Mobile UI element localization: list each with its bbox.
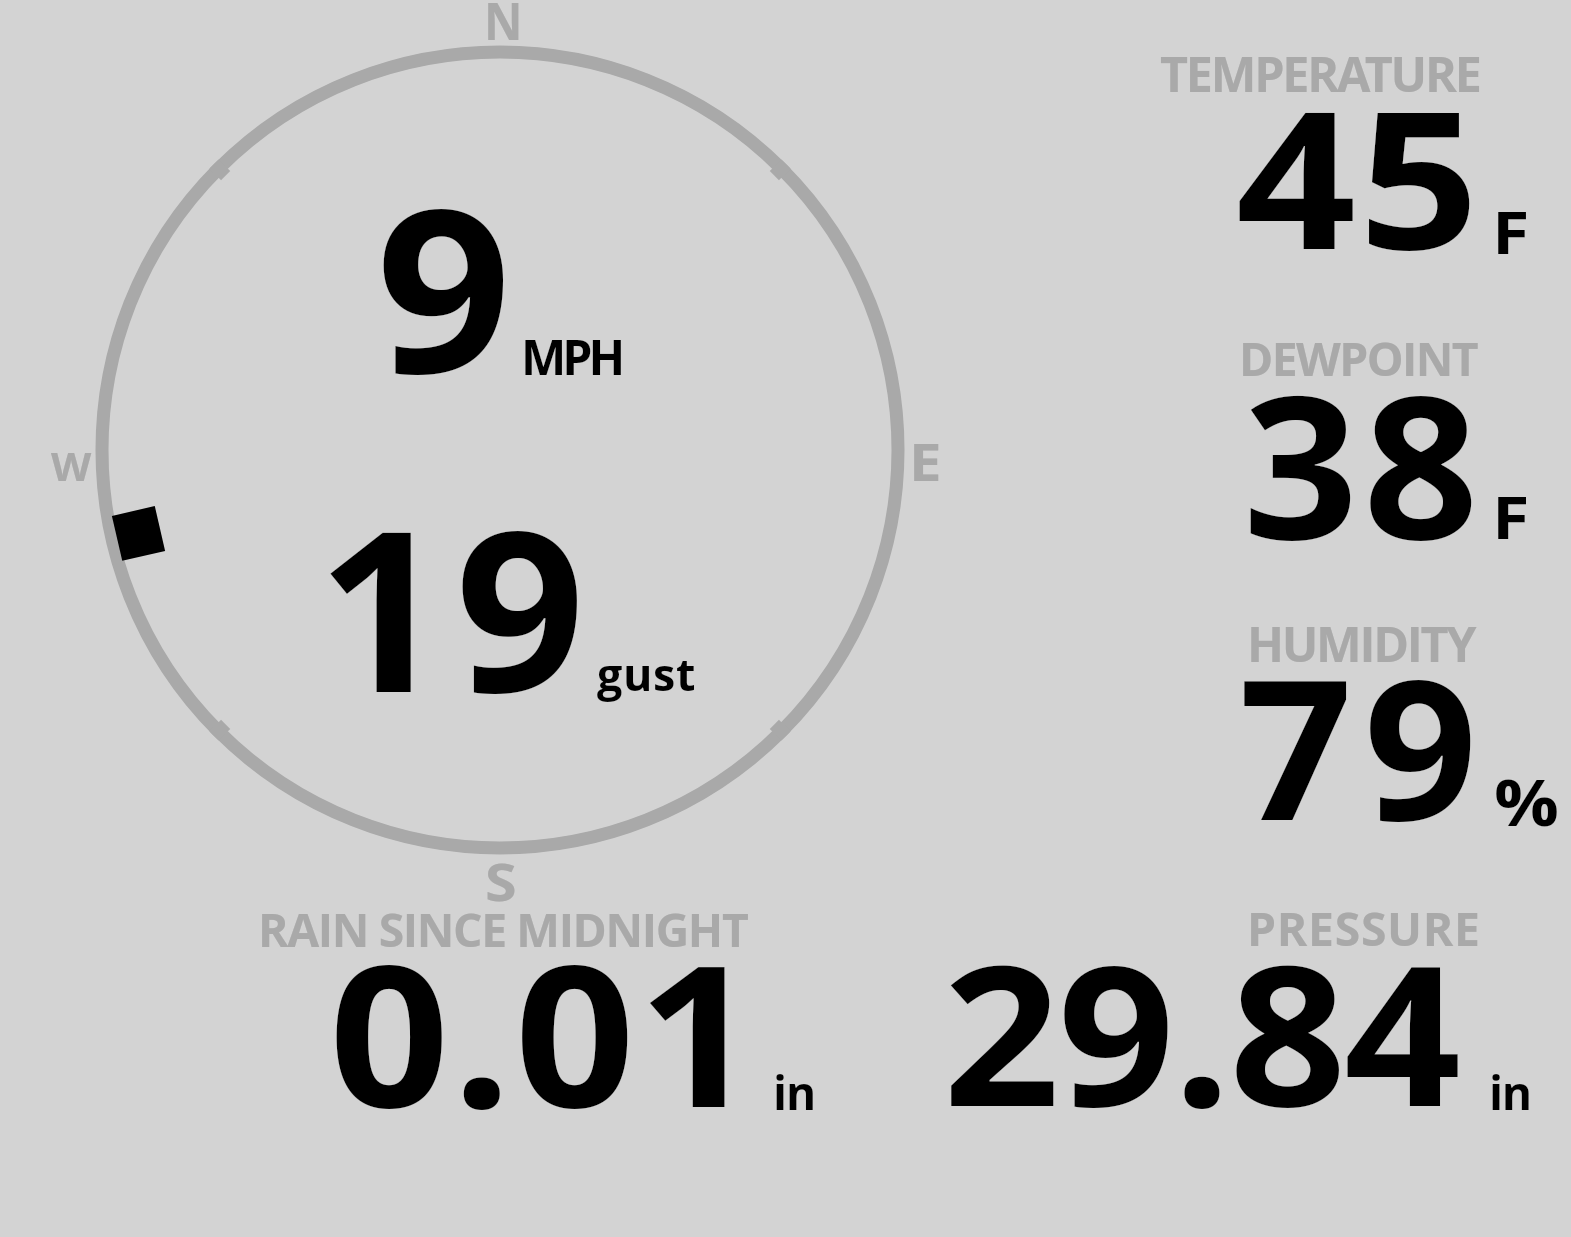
button[interactable]: Rain since midnight 0.01 inches [200, 885, 880, 1135]
staticText: PRESSURE [1247, 897, 1481, 960]
staticText: 9 [376, 132, 512, 440]
staticText: 38 [1243, 328, 1484, 597]
button[interactable]: Humidity 79 percent [1100, 598, 1571, 868]
staticText: RAIN SINCE MIDNIGHT [258, 898, 748, 961]
staticText: 45 [1236, 44, 1482, 304]
staticText: 79 [1239, 613, 1489, 876]
button[interactable]: Pressure 29.84 inches [900, 885, 1571, 1135]
staticText: S [485, 846, 517, 916]
staticText: MPH [521, 324, 622, 389]
staticText: 19 [317, 454, 594, 757]
button[interactable]: Temperature 45 degrees Fahrenheit [1100, 30, 1571, 300]
staticText: F [1492, 190, 1530, 272]
staticText: 29.84 [943, 898, 1459, 1162]
staticText: TEMPERATURE [1160, 40, 1480, 106]
staticText: HUMIDITY [1247, 610, 1475, 676]
button[interactable]: Wind 9 miles per hour, gusting to 19 [60, 10, 940, 890]
staticText: in [1489, 1061, 1531, 1124]
staticText: F [1492, 475, 1530, 556]
staticText: N [484, 0, 523, 55]
staticText: 0.01 [329, 899, 761, 1165]
staticText: W [51, 439, 92, 492]
staticText: in [773, 1061, 816, 1124]
staticText: DEWPOINT [1239, 327, 1478, 390]
staticText: % [1494, 758, 1560, 845]
button[interactable]: Dew point 38 degrees Fahrenheit [1100, 315, 1571, 585]
staticText: E [909, 426, 942, 496]
staticText: gust [597, 643, 697, 704]
